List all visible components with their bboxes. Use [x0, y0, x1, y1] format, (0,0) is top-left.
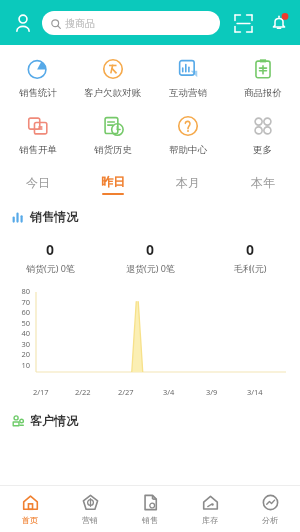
button[interactable]: 帮助中心	[150, 110, 225, 159]
staticText: 互动营销	[169, 87, 207, 99]
button[interactable]: 搜商品	[42, 11, 220, 35]
button[interactable]: 昨日	[75, 165, 150, 203]
staticText: 60	[10, 307, 30, 317]
button[interactable]: 0	[100, 240, 200, 274]
staticText: 今日	[26, 175, 50, 190]
button[interactable]: 库存	[180, 485, 240, 532]
staticText: 3/9	[206, 387, 218, 397]
staticText: 搜商品	[65, 17, 95, 30]
staticText: 销售开单	[19, 144, 57, 156]
staticText: 3/4	[163, 387, 175, 397]
staticText: 销货历史	[94, 144, 132, 156]
staticText: 更多	[253, 144, 272, 156]
button[interactable]: 分析	[240, 485, 300, 532]
staticText: 首页	[22, 515, 38, 525]
button[interactable]: 营销	[60, 485, 120, 532]
staticText: 3/14	[247, 387, 263, 397]
staticText: 分析	[262, 515, 278, 525]
button[interactable]: 销售统计	[0, 53, 75, 102]
staticText: 10	[10, 360, 30, 370]
button[interactable]: 今日	[0, 165, 75, 203]
staticText: 毛利(元)	[234, 262, 267, 274]
staticText: 销货(元) 0笔	[26, 262, 75, 274]
staticText: 2/17	[33, 387, 49, 397]
staticText: 0	[246, 240, 255, 259]
staticText: 昨日	[101, 174, 125, 189]
staticText: 商品报价	[244, 87, 282, 99]
staticText: 本年	[251, 175, 275, 190]
staticText: 销售情况	[30, 209, 78, 224]
staticText: 销售统计	[19, 87, 57, 99]
staticText: 客户欠款对账	[84, 87, 141, 99]
staticText: 2/22	[75, 387, 91, 397]
staticText: 营销	[82, 515, 98, 525]
button[interactable]: Scan	[230, 10, 256, 36]
button[interactable]: 客户欠款对账	[75, 53, 150, 102]
button[interactable]: 互动营销	[150, 53, 225, 102]
button[interactable]: 销货历史	[75, 110, 150, 159]
staticText: 80	[10, 286, 30, 296]
staticText: 退货(元) 0笔	[126, 262, 175, 274]
button[interactable]: Notifications	[266, 10, 292, 36]
button[interactable]: 本年	[225, 165, 300, 203]
staticText: 70	[10, 297, 30, 307]
staticText: 本月	[176, 175, 200, 190]
staticText: 销售	[142, 515, 158, 525]
staticText: 客户情况	[30, 413, 78, 428]
button[interactable]: 更多	[225, 110, 300, 159]
button[interactable]: Account	[10, 10, 36, 36]
staticText: 2/27	[118, 387, 134, 397]
staticText: 50	[10, 318, 30, 328]
staticText: 0	[46, 240, 55, 259]
staticText: 帮助中心	[169, 144, 207, 156]
button[interactable]: 商品报价	[225, 53, 300, 102]
staticText: 0	[146, 240, 155, 259]
staticText: 20	[10, 349, 30, 359]
button[interactable]: 首页	[0, 485, 60, 532]
button[interactable]: 0	[200, 240, 300, 274]
button[interactable]: 销售	[120, 485, 180, 532]
button[interactable]: 销售开单	[0, 110, 75, 159]
button[interactable]: 本月	[150, 165, 225, 203]
button[interactable]: 0	[0, 240, 100, 274]
staticText: 40	[10, 328, 30, 338]
staticText: 库存	[202, 515, 218, 525]
staticText: 30	[10, 339, 30, 349]
